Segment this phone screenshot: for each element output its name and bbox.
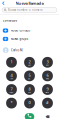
- staticText: 9: [46, 86, 48, 91]
- button[interactable]: 8: [24, 84, 35, 95]
- button[interactable]: 7: [6, 84, 17, 95]
- button[interactable]: 0: [24, 98, 35, 108]
- staticText: GHI: [10, 78, 12, 80]
- button[interactable]: 5: [24, 70, 35, 81]
- staticText: 4: [10, 73, 12, 78]
- button[interactable]: Nuevo grupo: [0, 35, 59, 43]
- button[interactable]: Carlos M.: [0, 46, 59, 54]
- staticText: PQRS: [9, 91, 13, 93]
- staticText: DEF: [46, 64, 49, 66]
- staticText: MNO: [46, 78, 49, 80]
- staticText: JKL: [28, 78, 30, 80]
- staticText: 2: [28, 59, 30, 64]
- staticText: Nuevo contacto: [10, 29, 30, 32]
- staticText: 6: [46, 73, 48, 78]
- staticText: 1: [10, 59, 12, 64]
- staticText: 5: [28, 73, 30, 78]
- staticText: #: [46, 100, 49, 105]
- button[interactable]: Delete: [42, 111, 53, 119]
- staticText: 8: [28, 86, 30, 91]
- staticText: WXYZ: [45, 91, 49, 93]
- button[interactable]: 9: [42, 84, 53, 95]
- staticText: 7: [10, 86, 12, 91]
- staticText: Buscar nombre o número: [8, 8, 43, 12]
- button[interactable]: #: [42, 98, 53, 108]
- button[interactable]: 6: [42, 70, 53, 81]
- button[interactable]: Call: [24, 111, 35, 119]
- button[interactable]: 1: [6, 57, 17, 68]
- button[interactable]: *: [6, 98, 17, 108]
- staticText: 3: [46, 59, 48, 64]
- staticText: ABC: [28, 64, 31, 66]
- button[interactable]: Nuevo contacto: [0, 26, 59, 35]
- staticText: Nuevo grupo: [10, 37, 28, 41]
- staticText: Carlos M.: [11, 48, 23, 52]
- staticText: Nueva llamada: [15, 0, 43, 6]
- button[interactable]: 4: [6, 70, 17, 81]
- button[interactable]: Back: [1, 0, 7, 6]
- staticText: *: [10, 100, 12, 105]
- staticText: 0: [28, 100, 30, 105]
- button[interactable]: 2: [24, 57, 35, 68]
- staticText: Contactos: [3, 19, 17, 22]
- staticText: TUV: [28, 91, 31, 93]
- button[interactable]: 3: [42, 57, 53, 68]
